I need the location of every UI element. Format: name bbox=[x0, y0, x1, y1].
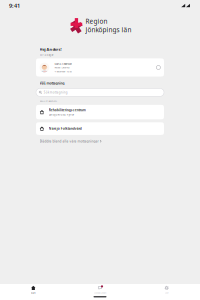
button[interactable]: Meddelanden bbox=[67, 286, 133, 294]
staticText: Mer bbox=[165, 291, 169, 294]
staticText: 9:41 bbox=[9, 2, 20, 9]
staticText: Maria Andersson bbox=[54, 62, 71, 65]
staticText: Bläddra bland alla våra mottagningar bbox=[40, 139, 99, 143]
staticText: Tor 4 dagar bbox=[40, 53, 54, 57]
staticText: Start bbox=[31, 291, 36, 294]
button[interactable]: Närsjö Folktandvård bbox=[36, 122, 164, 135]
button[interactable]: Mer bbox=[133, 286, 200, 294]
staticText: Välj mottagning bbox=[40, 81, 65, 85]
staticText: Region bbox=[85, 17, 107, 25]
staticText: Rehabiliteringscentrum bbox=[49, 108, 86, 112]
staticText: Närsjö Folktandvård bbox=[49, 126, 82, 131]
staticText: Hej Anders! bbox=[40, 46, 62, 52]
button[interactable]: Maria Andersson bbox=[36, 58, 164, 76]
staticText: Sök mottagning bbox=[44, 90, 68, 94]
staticText: SENAST BESÖKTA bbox=[40, 99, 58, 102]
button[interactable]: Sök mottagning bbox=[36, 88, 164, 96]
staticText: 4 december 10:00 bbox=[54, 70, 71, 73]
button[interactable]: Rehabiliteringscentrum bbox=[36, 105, 164, 119]
staticText: Meddelanden bbox=[94, 291, 106, 294]
staticText: Recept Läkarhus bbox=[54, 66, 69, 69]
staticText: Jönköpings län bbox=[85, 25, 131, 34]
button[interactable]: Start bbox=[0, 286, 67, 294]
button[interactable]: Bläddra bland alla våra mottagningar bbox=[36, 135, 101, 143]
staticText: Länssjukhuset Ryhov bbox=[49, 113, 74, 116]
